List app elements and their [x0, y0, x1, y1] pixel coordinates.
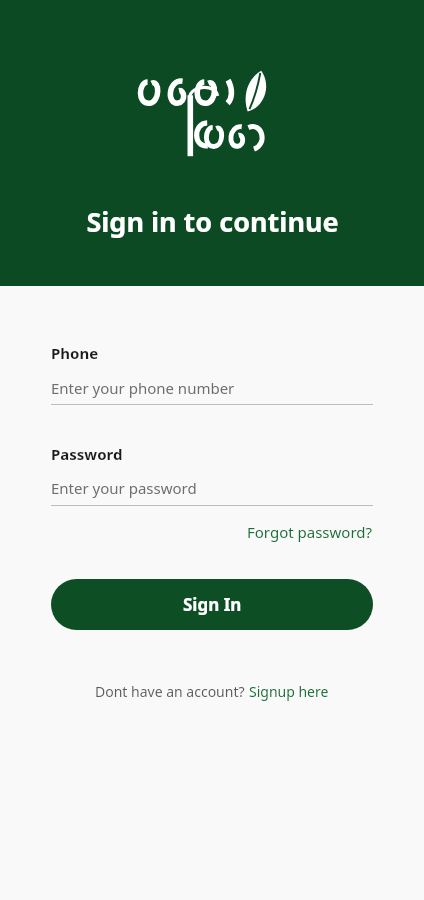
staticText: Enter your phone number	[51, 378, 235, 398]
button[interactable]: Enter your password	[51, 478, 373, 506]
button[interactable]: Signup here	[249, 682, 329, 701]
staticText: Dont have an account?	[95, 682, 249, 701]
button[interactable]: Forgot password?	[247, 519, 373, 545]
staticText: Enter your password	[51, 478, 197, 498]
staticText: Signup here	[249, 682, 329, 701]
button[interactable]: Enter your phone number	[51, 378, 373, 405]
staticText: Sign In	[183, 593, 242, 616]
button[interactable]: Sign In	[51, 579, 373, 630]
staticText: Sign in to continue	[86, 203, 339, 240]
staticText: Phone	[51, 343, 99, 363]
other: Haritha Pola logo	[142, 68, 282, 166]
staticText: Forgot password?	[247, 522, 373, 542]
staticText: Password	[51, 444, 123, 464]
